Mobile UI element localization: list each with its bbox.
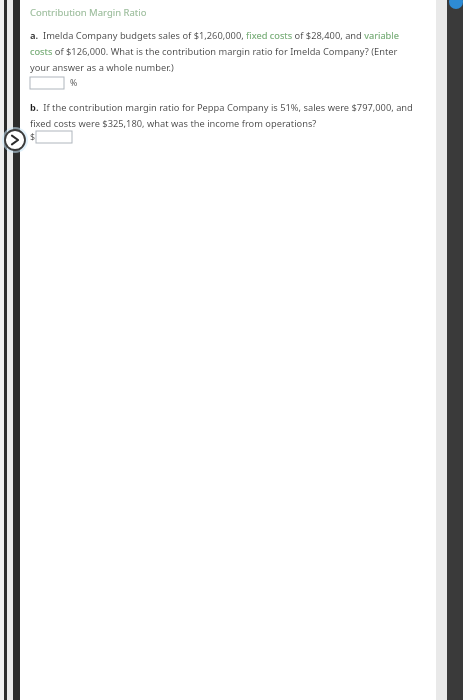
staticText: b. If the contribution margin ratio for …	[30, 101, 433, 129]
button[interactable]	[30, 77, 64, 89]
button[interactable]: Info	[449, 0, 463, 9]
staticText: %	[70, 77, 78, 89]
button[interactable]	[36, 131, 72, 143]
staticText: $	[30, 131, 36, 143]
staticText: a. Imelda Company budgets sales of $1,26…	[30, 29, 417, 73]
button[interactable]: Contribution Margin Ratio	[30, 6, 147, 19]
button[interactable]: Next	[2, 127, 28, 153]
